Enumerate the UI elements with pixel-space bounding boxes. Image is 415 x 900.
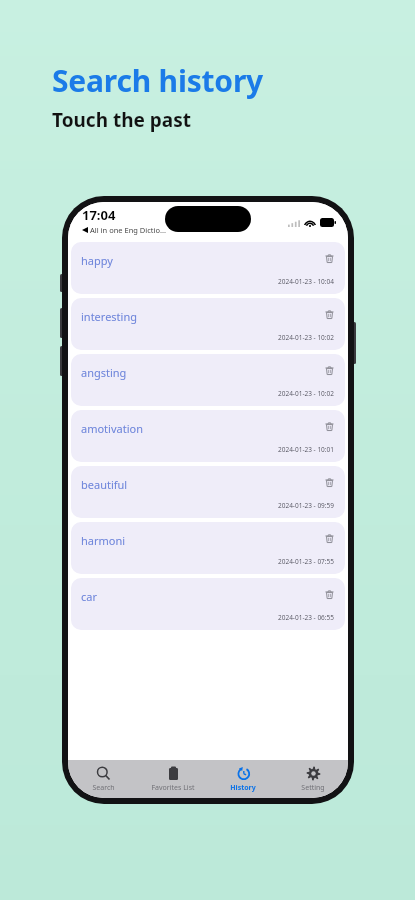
staticText: 2024-01-23 - 06:55 xyxy=(278,613,335,622)
button[interactable]: happy xyxy=(71,242,345,294)
button[interactable]: Delete harmoni xyxy=(319,528,339,548)
staticText: amotivation xyxy=(81,421,143,436)
staticText: 2024-01-23 - 10:02 xyxy=(278,333,335,342)
button[interactable]: harmoni xyxy=(71,522,345,574)
button[interactable]: Delete car xyxy=(319,584,339,604)
button[interactable]: angsting xyxy=(71,354,345,406)
button[interactable]: Delete amotivation xyxy=(319,416,339,436)
staticText: car xyxy=(81,589,97,604)
staticText: Favorites List xyxy=(151,783,195,793)
staticText: interesting xyxy=(81,309,137,324)
staticText: Search xyxy=(92,783,115,793)
button[interactable]: Search xyxy=(68,760,138,798)
button[interactable]: amotivation xyxy=(71,410,345,462)
button[interactable]: Favorites List xyxy=(138,760,208,798)
staticText: 2024-01-23 - 07:55 xyxy=(278,557,335,566)
staticText: All in one Eng Dictio... xyxy=(90,225,167,235)
staticText: 2024-01-23 - 09:59 xyxy=(278,501,335,510)
staticText: 2024-01-23 - 10:02 xyxy=(278,389,335,398)
staticText: happy xyxy=(81,253,113,268)
button[interactable]: car xyxy=(71,578,345,630)
button[interactable]: beautiful xyxy=(71,466,345,518)
staticText: 17:04 xyxy=(82,206,116,224)
button[interactable]: Setting xyxy=(278,760,348,798)
button[interactable]: Delete interesting xyxy=(319,304,339,324)
staticText: History xyxy=(230,783,256,793)
button[interactable]: History xyxy=(208,760,278,798)
button[interactable]: Delete beautiful xyxy=(319,472,339,492)
staticText: harmoni xyxy=(81,533,126,548)
button[interactable]: interesting xyxy=(71,298,345,350)
staticText: beautiful xyxy=(81,477,128,492)
staticText: angsting xyxy=(81,365,127,380)
staticText: Setting xyxy=(301,783,325,793)
staticText: Search history xyxy=(52,60,264,101)
staticText: 2024-01-23 - 10:01 xyxy=(278,445,335,454)
button[interactable]: Delete happy xyxy=(319,248,339,268)
button[interactable]: Delete angsting xyxy=(319,360,339,380)
staticText: 2024-01-23 - 10:04 xyxy=(278,277,335,286)
staticText: Touch the past xyxy=(52,107,192,133)
